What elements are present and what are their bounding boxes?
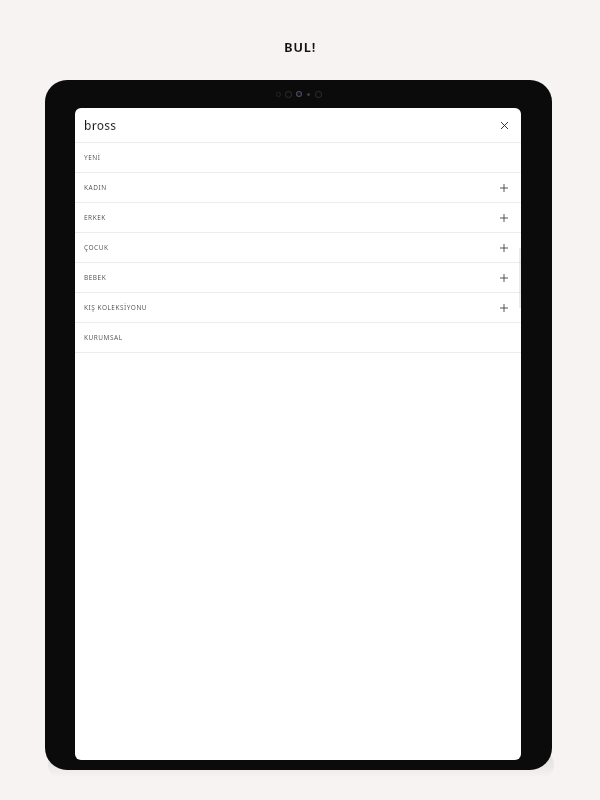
staticText: KURUMSAL	[84, 333, 123, 342]
button[interactable]: KURUMSAL	[75, 323, 521, 352]
staticText: BUL!	[0, 38, 600, 56]
staticText: BEBEK	[84, 273, 107, 282]
button[interactable]: bross	[79, 113, 122, 137]
staticText: YENİ	[84, 153, 101, 162]
button[interactable]: YENİ	[75, 143, 521, 172]
staticText: KADIN	[84, 183, 107, 192]
button[interactable]: BEBEK	[75, 263, 521, 292]
staticText: bross	[84, 117, 117, 133]
staticText: ERKEK	[84, 213, 106, 222]
button[interactable]: KADIN	[75, 173, 521, 202]
button[interactable]: Close	[493, 114, 515, 136]
staticText: ÇOCUK	[84, 243, 109, 252]
staticText: KIŞ KOLEKSİYONU	[84, 303, 148, 312]
button[interactable]: ÇOCUK	[75, 233, 521, 262]
button[interactable]: KIŞ KOLEKSİYONU	[75, 293, 521, 322]
button[interactable]: ERKEK	[75, 203, 521, 232]
